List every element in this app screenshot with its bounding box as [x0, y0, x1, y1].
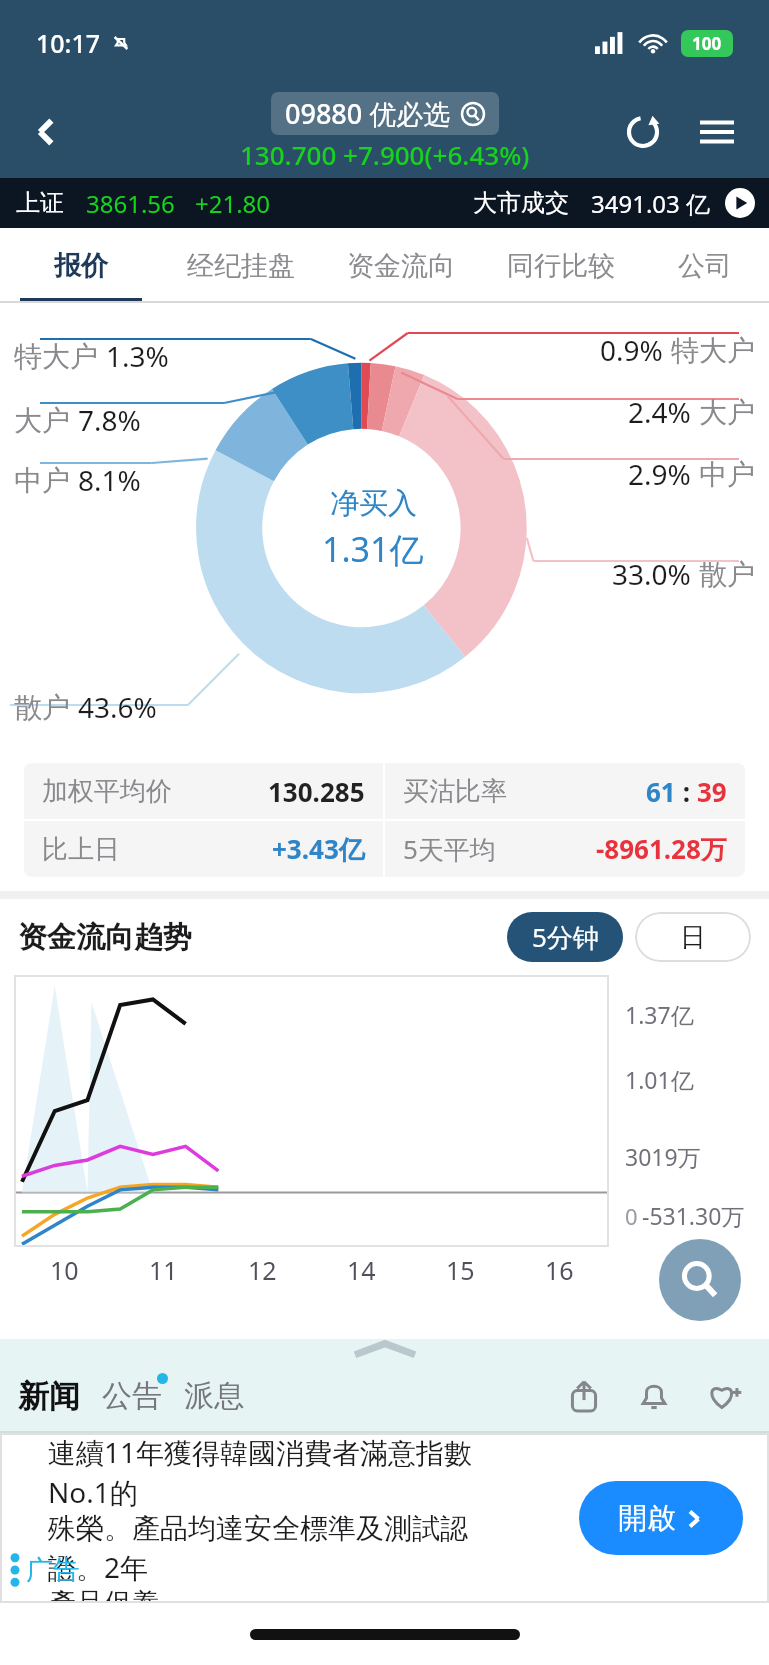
- staticText: 买沽比率: [403, 775, 507, 808]
- staticText: 39: [697, 774, 727, 809]
- button[interactable]: 买沽比率: [403, 763, 727, 819]
- staticText: 7.8%: [78, 401, 141, 439]
- staticText: 广告: [26, 1553, 80, 1587]
- staticText: 特大户: [14, 339, 98, 374]
- staticText: 净买入: [330, 485, 417, 522]
- staticText: 0: [625, 1201, 638, 1231]
- button[interactable]: 比上日: [42, 821, 365, 877]
- staticText: 0.9%: [600, 331, 663, 369]
- staticText: 加权平均价: [42, 775, 172, 808]
- staticText: 殊榮。產品均達安全標準及測試認證。2年: [48, 1511, 499, 1586]
- staticText: 日: [680, 921, 706, 954]
- staticText: -8961.28万: [596, 831, 727, 867]
- staticText: 15: [446, 1253, 475, 1287]
- staticText: 10:17: [36, 26, 101, 60]
- staticText: 1.01亿: [625, 1064, 694, 1095]
- button[interactable]: 開啟: [579, 1481, 743, 1555]
- staticText: 10: [50, 1253, 79, 1287]
- staticText: 130.700 +7.900(+6.43%): [240, 137, 530, 172]
- staticText: 開啟: [618, 1500, 676, 1537]
- staticText: 1.3%: [106, 337, 169, 375]
- button[interactable]: 经纪挂盘: [161, 228, 321, 303]
- button[interactable]: Share: [557, 1369, 611, 1423]
- staticText: 资金流向趋势: [18, 919, 192, 956]
- button[interactable]: 5天平均: [403, 821, 727, 877]
- staticText: 11: [149, 1253, 178, 1287]
- button[interactable]: 派息: [184, 1377, 244, 1415]
- button[interactable]: Refresh: [615, 104, 671, 160]
- button[interactable]: Search: [659, 1239, 741, 1321]
- staticText: 43.6%: [78, 688, 157, 726]
- staticText: 同行比较: [507, 249, 615, 283]
- staticText: +3.43亿: [272, 831, 365, 867]
- button[interactable]: 同行比较: [481, 228, 641, 303]
- button[interactable]: 日: [635, 912, 751, 962]
- button[interactable]: 5分钟: [507, 912, 623, 962]
- staticText: 公司: [678, 249, 732, 283]
- staticText: 大户: [699, 395, 755, 430]
- staticText: 3019万: [625, 1141, 701, 1172]
- button[interactable]: 公司: [641, 228, 769, 303]
- staticText: 大户: [14, 403, 70, 438]
- staticText: 61: [646, 774, 676, 809]
- staticText: 2.4%: [628, 393, 691, 431]
- button[interactable]: 連續11年獲得韓國消費者滿意指數No.1的: [0, 1433, 769, 1603]
- button[interactable]: 上证: [0, 178, 769, 228]
- button[interactable]: 09880 优必选: [285, 95, 485, 132]
- staticText: 16: [545, 1253, 574, 1287]
- button[interactable]: 公告: [102, 1377, 162, 1415]
- staticText: 09880 优必选: [285, 95, 451, 132]
- staticText: 资金流向: [347, 249, 455, 283]
- staticText: 上证: [16, 188, 64, 218]
- staticText: 1.31亿: [322, 526, 424, 572]
- staticText: 中户: [14, 463, 70, 498]
- button[interactable]: Back: [18, 104, 74, 160]
- button[interactable]: 加权平均价: [42, 763, 365, 819]
- button[interactable]: Alerts: [627, 1369, 681, 1423]
- staticText: 2.9%: [628, 455, 691, 493]
- staticText: 連續11年獲得韓國消費者滿意指數No.1的: [48, 1433, 499, 1511]
- staticText: 3491.03 亿: [591, 187, 711, 220]
- button[interactable]: 资金流向: [321, 228, 481, 303]
- staticText: 3861.56: [86, 187, 175, 220]
- staticText: 8.1%: [78, 461, 141, 499]
- staticText: -531.30万: [642, 1200, 745, 1231]
- staticText: 1.37亿: [625, 999, 694, 1030]
- staticText: 经纪挂盘: [187, 249, 295, 283]
- staticText: 大市成交: [473, 188, 569, 218]
- staticText: 5天平均: [403, 831, 496, 867]
- staticText: 33.0%: [612, 555, 691, 593]
- button[interactable]: 报价: [0, 228, 161, 303]
- staticText: 派息: [184, 1377, 244, 1415]
- staticText: 特大户: [671, 333, 755, 368]
- staticText: +21.80: [195, 187, 271, 220]
- staticText: 散户: [14, 690, 70, 725]
- staticText: 產品保養: [48, 1586, 160, 1603]
- staticText: 5分钟: [532, 919, 599, 955]
- staticText: 新闻: [18, 1377, 80, 1416]
- staticText: 12: [248, 1253, 277, 1287]
- staticText: 公告: [102, 1377, 162, 1415]
- button[interactable]: Add to watchlist: [697, 1369, 751, 1423]
- staticText: 130.285: [268, 774, 365, 809]
- staticText: 中户: [699, 457, 755, 492]
- staticText: 比上日: [42, 833, 120, 866]
- staticText: 散户: [699, 557, 755, 592]
- staticText: 报价: [54, 249, 108, 283]
- button[interactable]: Menu: [689, 104, 745, 160]
- staticText: :: [676, 774, 697, 809]
- staticText: 14: [347, 1253, 376, 1287]
- button[interactable]: 新闻: [18, 1377, 80, 1416]
- staticText: 100: [692, 32, 722, 55]
